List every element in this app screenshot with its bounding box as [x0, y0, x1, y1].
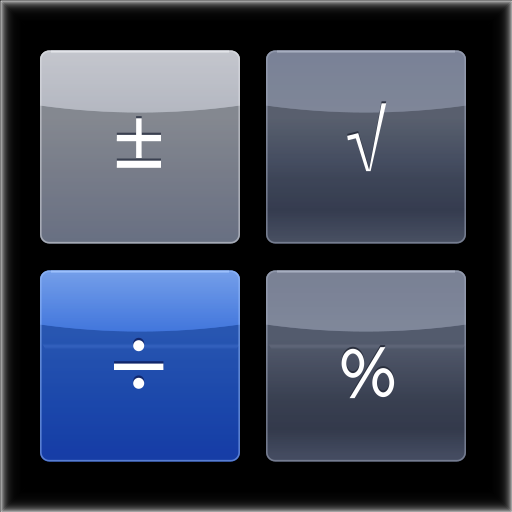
- button[interactable]: Percent: [266, 271, 466, 468]
- button[interactable]: Divide: [40, 271, 240, 468]
- button[interactable]: Square root: [266, 51, 466, 250]
- button[interactable]: Plus minus: [40, 51, 240, 250]
